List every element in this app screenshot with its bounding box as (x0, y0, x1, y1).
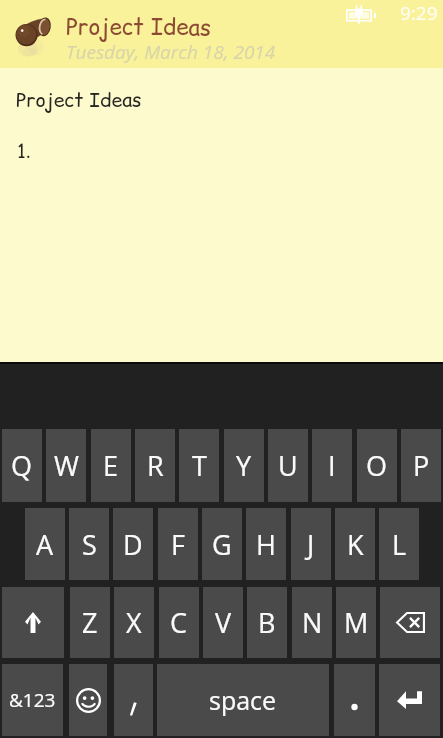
button[interactable]: J (291, 508, 331, 580)
button[interactable]: C (159, 587, 199, 658)
staticText: 1. (17, 137, 31, 164)
button[interactable]: L (379, 508, 419, 580)
button[interactable]: O (357, 429, 397, 502)
button[interactable]: X (114, 587, 154, 658)
button[interactable]: U (268, 429, 308, 502)
staticText: Y (236, 447, 252, 484)
other: Pinned note (6, 9, 60, 63)
staticText: R (147, 447, 164, 484)
staticText: F (171, 526, 185, 563)
button[interactable]: N (292, 587, 332, 658)
button[interactable]: W (46, 429, 86, 502)
staticText: J (307, 526, 315, 563)
staticText: Project Ideas (66, 11, 211, 42)
button[interactable]: T (179, 429, 219, 502)
staticText: M (344, 604, 369, 641)
button[interactable]: Emoji (69, 664, 107, 736)
button[interactable]: S (69, 508, 109, 580)
button[interactable]: E (91, 429, 131, 502)
staticText: T (192, 447, 207, 484)
button[interactable]: P (401, 429, 441, 502)
button[interactable]: R (135, 429, 175, 502)
button[interactable]: Backspace (380, 587, 440, 658)
staticText: I (328, 447, 336, 484)
button[interactable]: B (247, 587, 287, 658)
button[interactable]: A (25, 508, 65, 580)
staticText: E (103, 447, 119, 484)
button[interactable]: I (312, 429, 352, 502)
staticText: W (54, 447, 79, 484)
staticText: space (209, 683, 277, 717)
staticText: H (256, 526, 276, 563)
button[interactable]: &123 (2, 664, 63, 736)
button[interactable]: G (202, 508, 242, 580)
staticText: Project Ideas (16, 86, 142, 113)
staticText: V (215, 604, 232, 641)
button[interactable]: Y (224, 429, 264, 502)
button[interactable]: V (203, 587, 243, 658)
button[interactable]: D (113, 508, 153, 580)
staticText: K (347, 526, 364, 563)
button[interactable]: Q (2, 429, 42, 502)
button[interactable]: Z (70, 587, 110, 658)
button[interactable]: Comma (114, 664, 153, 736)
staticText: G (212, 526, 232, 563)
staticText: O (366, 447, 388, 484)
staticText: C (170, 604, 188, 641)
staticText: P (413, 447, 430, 484)
button[interactable]: K (335, 508, 375, 580)
staticText: U (278, 447, 298, 484)
button[interactable]: M (336, 587, 376, 658)
staticText: L (392, 526, 407, 563)
other: Battery charging (346, 5, 376, 25)
staticText: Tuesday, March 18, 2014 (66, 39, 276, 65)
staticText: 9:29 (400, 0, 438, 26)
button[interactable]: F (158, 508, 198, 580)
staticText: &123 (9, 687, 56, 713)
staticText: Q (11, 447, 33, 484)
staticText: S (82, 526, 97, 563)
button[interactable]: H (246, 508, 286, 580)
staticText: A (36, 526, 54, 563)
button[interactable]: Shift (2, 587, 64, 658)
button[interactable]: space (157, 664, 329, 736)
staticText: Z (82, 604, 98, 641)
staticText: X (126, 604, 142, 641)
button[interactable]: Period (334, 664, 375, 736)
button[interactable]: Enter (379, 664, 440, 736)
staticText: B (258, 604, 276, 641)
staticText: N (302, 604, 323, 641)
staticText: D (123, 526, 143, 563)
